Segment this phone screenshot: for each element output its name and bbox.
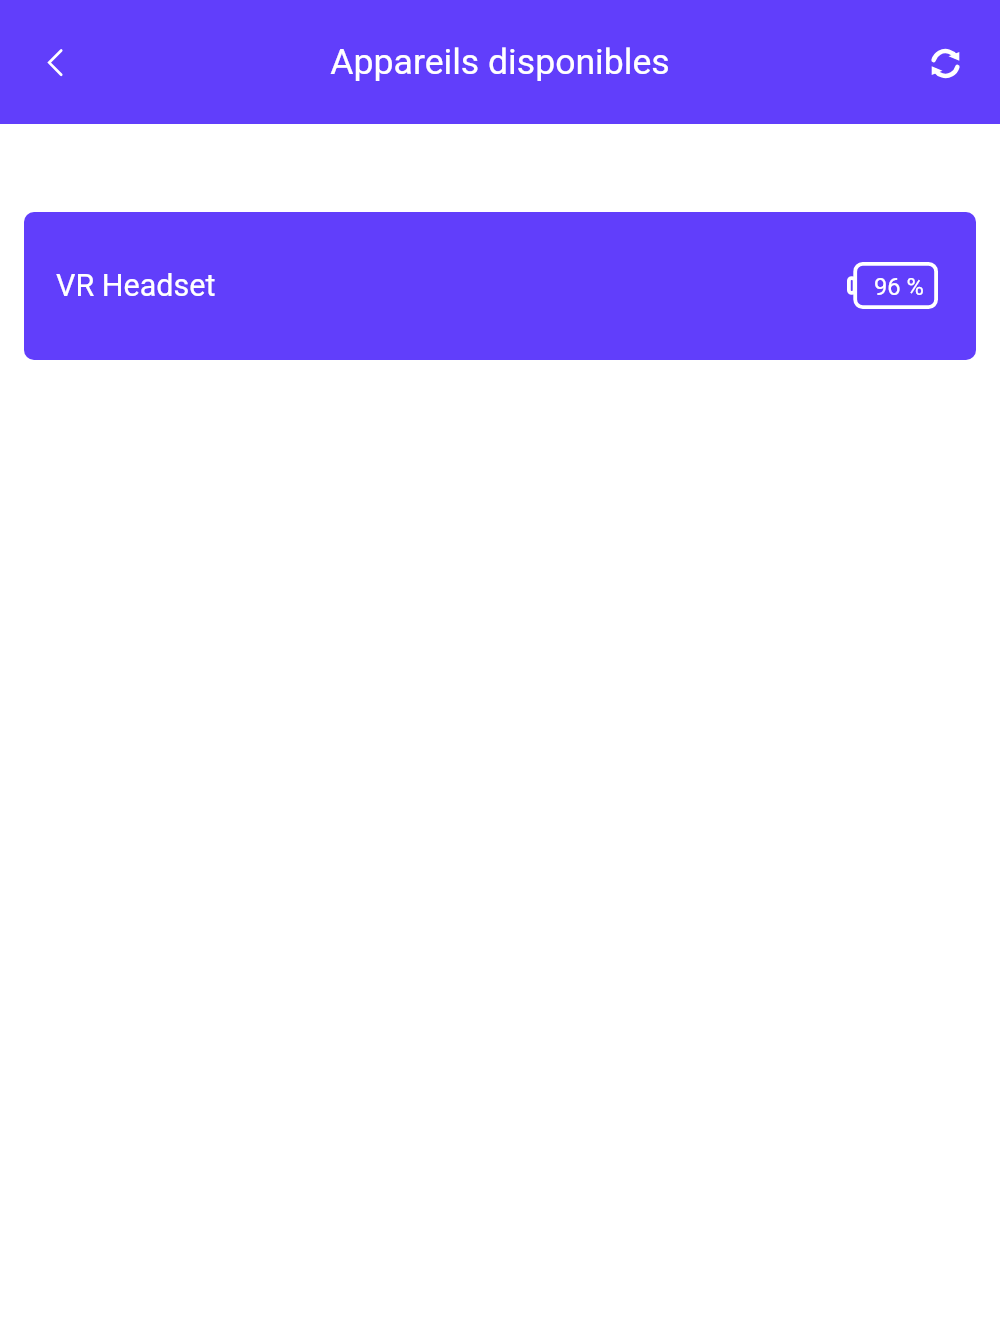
- button[interactable]: Back: [19, 27, 89, 97]
- button[interactable]: Refresh: [910, 28, 980, 98]
- staticText: 96 %: [874, 273, 924, 301]
- button[interactable]: VR Headset: [24, 212, 976, 360]
- staticText: Appareils disponibles: [330, 41, 670, 83]
- staticText: VR Headset: [56, 268, 216, 304]
